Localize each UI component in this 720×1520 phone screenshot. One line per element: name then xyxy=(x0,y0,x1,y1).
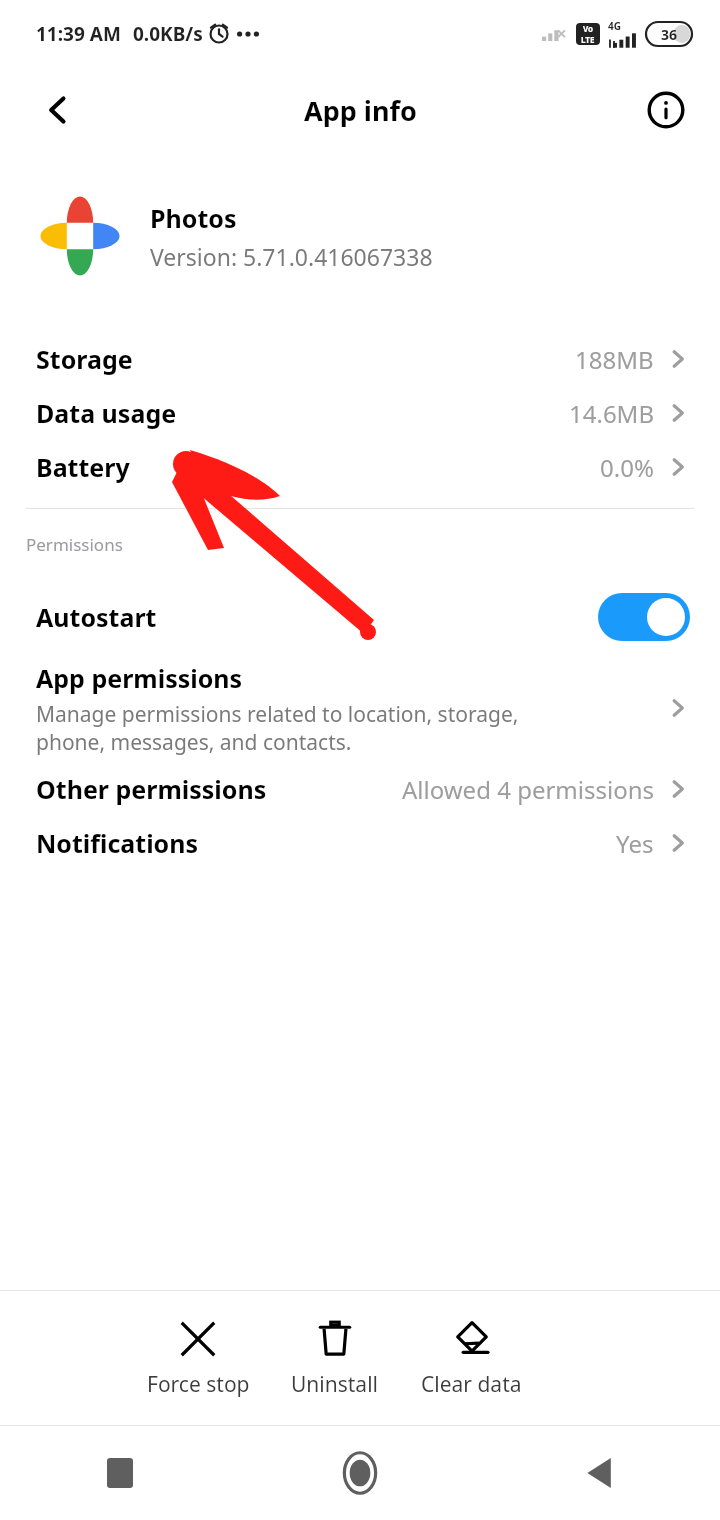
staticText: Manage permissions related to location, … xyxy=(36,700,519,756)
button[interactable]: Autostart toggle, on xyxy=(598,593,690,641)
staticText: Notifications xyxy=(36,826,199,860)
button[interactable]: Uninstall xyxy=(266,1310,403,1407)
button[interactable]: Storage xyxy=(0,332,720,386)
button[interactable]: Other permissions xyxy=(0,762,720,816)
button[interactable]: Data usage xyxy=(0,386,720,440)
staticText: Yes xyxy=(616,827,654,860)
staticText: Allowed 4 permissions xyxy=(402,773,654,806)
button[interactable]: App permissions xyxy=(0,654,720,762)
button[interactable]: Back xyxy=(30,82,86,138)
staticText: Clear data xyxy=(421,1370,522,1399)
staticText: 11:39 AM xyxy=(36,21,121,47)
button[interactable]: Notifications xyxy=(0,816,720,870)
staticText: 0.0KB/s xyxy=(133,21,203,47)
staticText: Force stop xyxy=(147,1370,250,1399)
button[interactable]: Back xyxy=(480,1426,720,1520)
staticText: Storage xyxy=(36,342,133,376)
staticText: Other permissions xyxy=(36,772,267,806)
staticText: Permissions xyxy=(26,533,123,556)
staticText: App info xyxy=(304,92,417,129)
staticText: App permissions xyxy=(36,661,243,695)
staticText: Photos xyxy=(150,201,237,235)
staticText: Version: 5.71.0.416067338 xyxy=(150,241,433,272)
staticText: Uninstall xyxy=(291,1370,378,1399)
staticText: Battery xyxy=(36,450,130,484)
button[interactable]: Clear data xyxy=(403,1310,540,1407)
staticText: Autostart xyxy=(36,600,157,634)
staticText: Vo xyxy=(583,23,594,34)
staticText: 0.0% xyxy=(600,451,654,484)
button[interactable]: Autostart xyxy=(0,580,720,654)
button[interactable]: Battery xyxy=(0,440,720,494)
button[interactable]: Home xyxy=(240,1426,480,1520)
staticText: 36 xyxy=(661,25,678,44)
staticText: 14.6MB xyxy=(569,397,654,430)
staticText: Data usage xyxy=(36,396,177,430)
staticText: 188MB xyxy=(575,343,654,376)
button[interactable]: Force stop xyxy=(130,1310,266,1407)
staticText: LTE xyxy=(581,34,595,45)
button[interactable]: Recent apps xyxy=(0,1426,240,1520)
button[interactable]: App details xyxy=(638,82,694,138)
staticText: 4G xyxy=(608,19,621,33)
